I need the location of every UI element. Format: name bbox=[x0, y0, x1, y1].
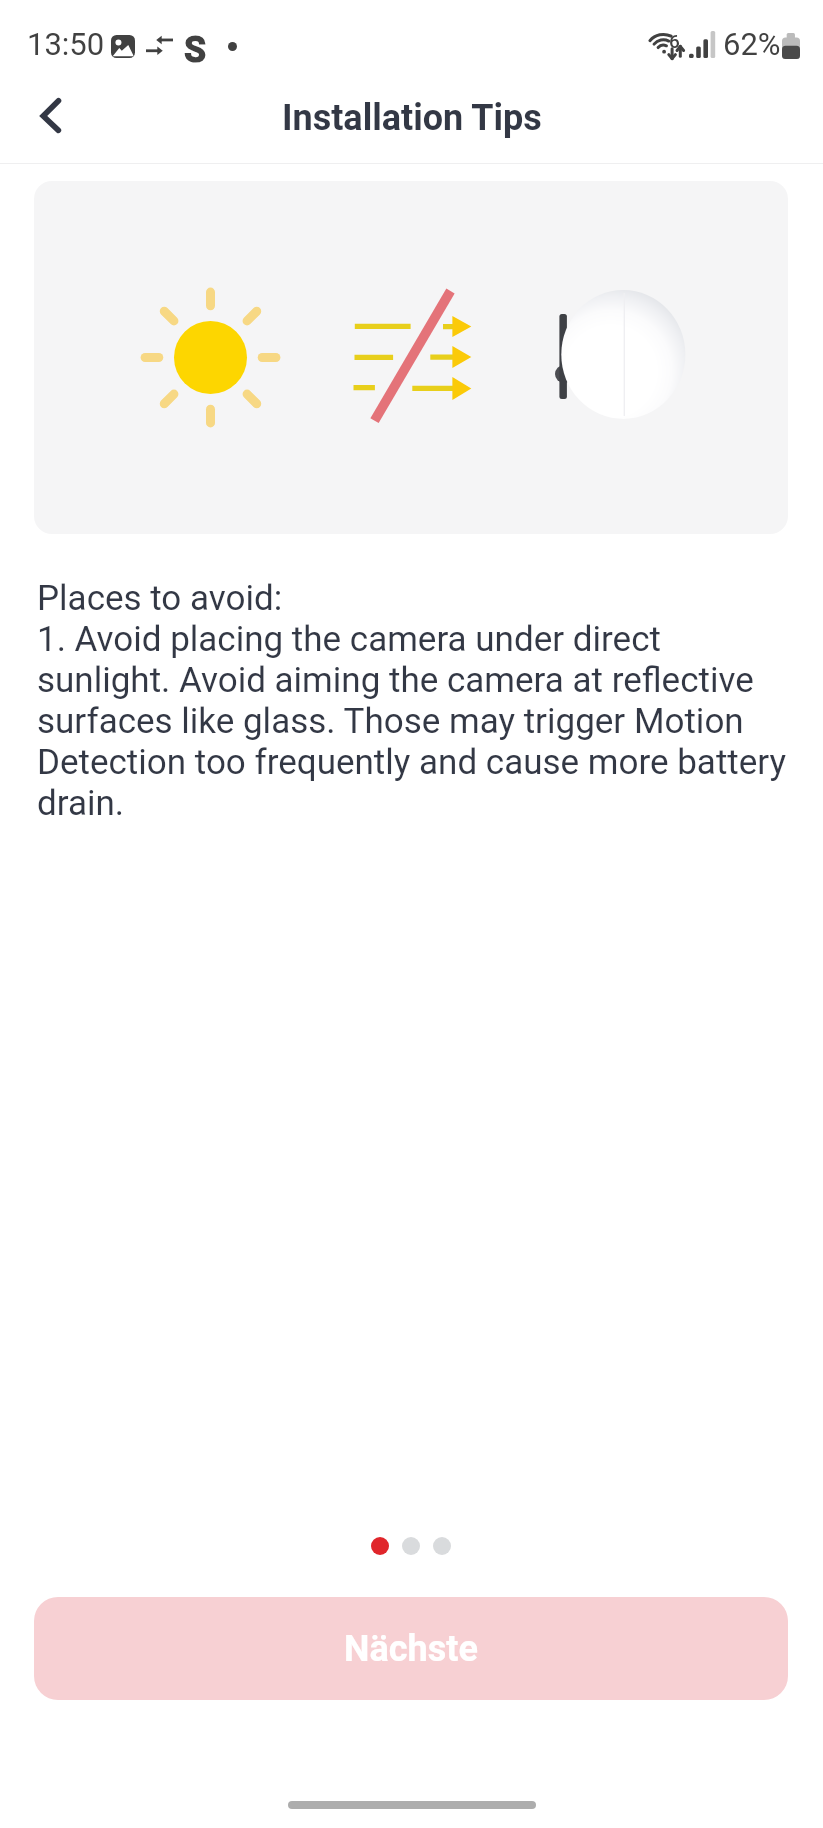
staticText: 13:50 bbox=[27, 26, 105, 62]
button[interactable]: Page 1 bbox=[371, 1537, 389, 1555]
staticText: Installation Tips bbox=[282, 97, 542, 139]
staticText: S bbox=[184, 29, 207, 71]
staticText: Places to avoid: 1. Avoid placing the ca… bbox=[37, 578, 789, 824]
button[interactable]: Page 3 bbox=[433, 1537, 451, 1555]
button[interactable]: Page 2 bbox=[402, 1537, 420, 1555]
button[interactable]: Back bbox=[10, 82, 78, 150]
button[interactable]: Nächste bbox=[34, 1597, 788, 1700]
staticText: 62% bbox=[723, 26, 781, 62]
staticText: 6 bbox=[669, 30, 680, 52]
staticText: Nächste bbox=[344, 1628, 478, 1670]
